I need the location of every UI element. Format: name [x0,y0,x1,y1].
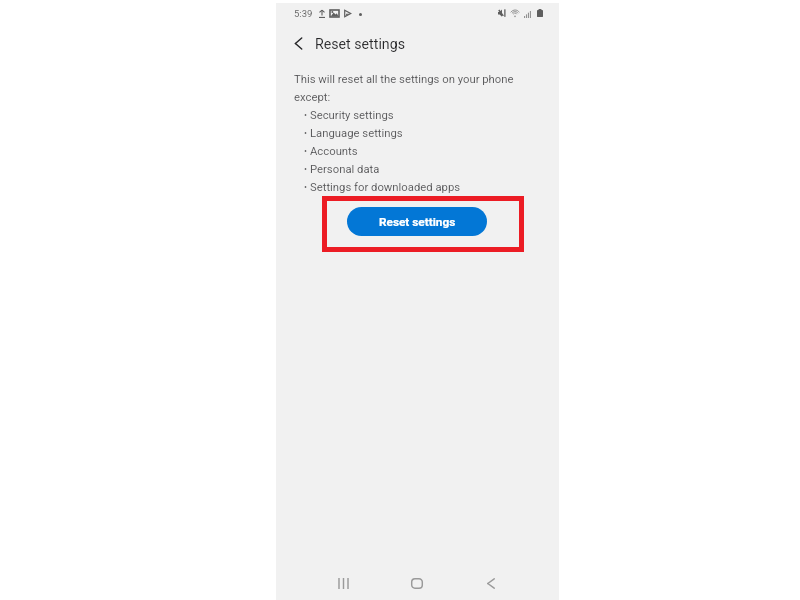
staticText: Accounts [310,145,358,158]
staticText: 5:39 [294,8,313,19]
staticText: This will reset all the settings on your… [294,73,520,104]
button[interactable]: Navigate back [287,32,309,54]
button[interactable]: Back [476,568,506,598]
staticText: • [304,128,308,139]
staticText: Personal data [310,163,380,176]
staticText: Reset settings [315,36,405,53]
staticText: • [304,146,308,157]
staticText: • [304,164,308,175]
staticText: • [304,110,308,121]
staticText: Security settings [310,109,394,122]
staticText: Reset settings [379,215,456,229]
staticText: Language settings [310,127,403,140]
button[interactable]: Home [402,568,432,598]
button[interactable]: Reset settings [347,207,487,236]
button[interactable]: Recent apps [328,568,358,598]
staticText: Settings for downloaded apps [310,181,461,194]
staticText: • [304,182,308,193]
